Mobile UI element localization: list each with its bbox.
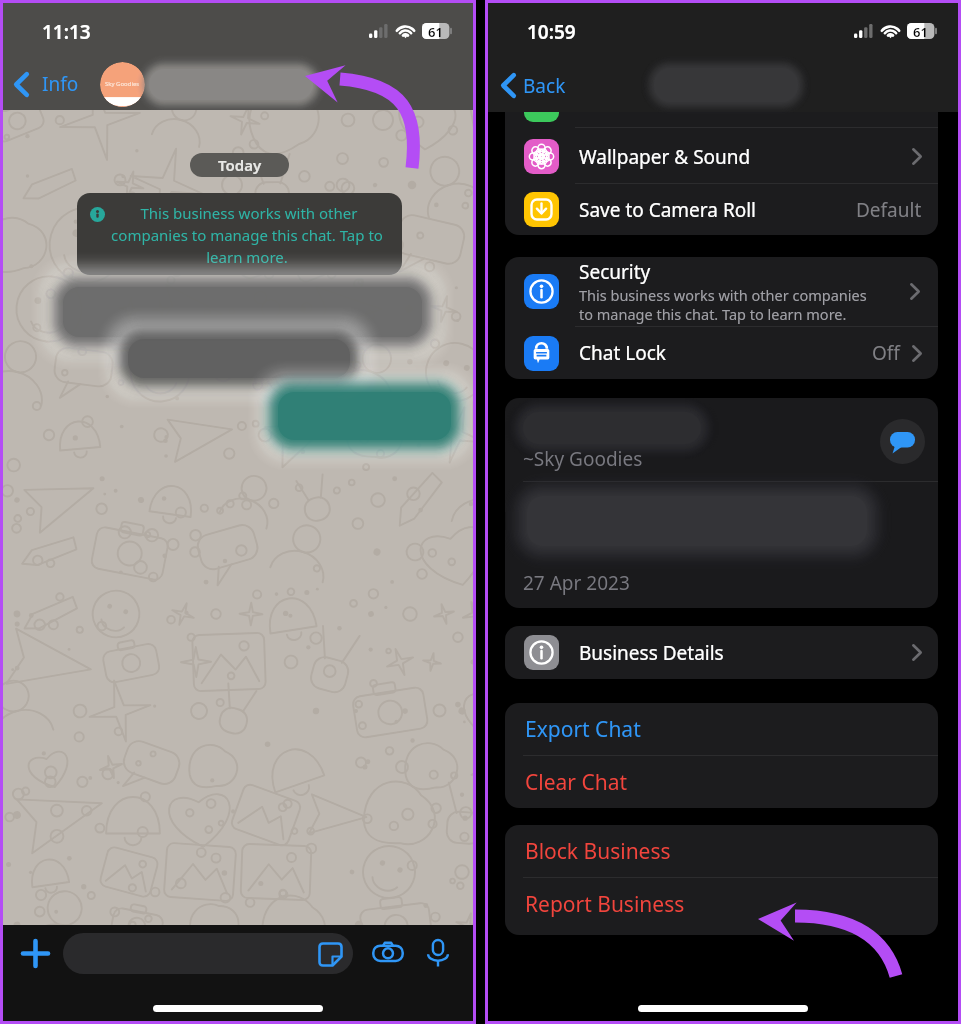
button[interactable]: Info [3, 71, 79, 97]
staticText: 27 Apr 2023 [523, 570, 630, 596]
staticText: Off [872, 340, 900, 366]
staticText: Block Business [525, 837, 671, 866]
staticText: 61 [913, 23, 928, 39]
staticText: Report Business [525, 890, 685, 919]
staticText: Business Details [579, 640, 724, 666]
staticText: 11:13 [42, 19, 91, 45]
staticText: 10:59 [527, 19, 576, 45]
button[interactable]: Back [488, 59, 576, 112]
staticText: Back [523, 73, 566, 99]
staticText: Security [579, 259, 651, 285]
staticText: This business works with other companies… [579, 285, 867, 324]
staticText: Info [42, 71, 79, 97]
button[interactable]: Message [880, 419, 925, 464]
button[interactable]: Block Business [505, 825, 938, 878]
button[interactable]: Clear Chat [505, 756, 938, 808]
staticText: Clear Chat [525, 768, 628, 797]
staticText: Save to Camera Roll [579, 197, 757, 223]
staticText: 61 [428, 23, 443, 39]
button[interactable]: Stickers [315, 939, 345, 969]
staticText: Sky Goodies [105, 80, 140, 88]
staticText: Wallpaper & Sound [579, 144, 751, 170]
button[interactable]: Business Details [505, 626, 938, 679]
staticText: Default [856, 197, 922, 223]
button[interactable]: Report Business [505, 878, 938, 931]
button[interactable]: Stickers [63, 933, 353, 974]
staticText: Export Chat [525, 715, 641, 744]
button[interactable]: ~Sky Goodies [505, 398, 938, 608]
button[interactable]: Save to Camera Roll [505, 183, 938, 235]
button[interactable]: Export Chat [505, 703, 938, 756]
button[interactable]: Voice message [419, 934, 457, 972]
staticText: Today [218, 155, 262, 175]
button[interactable]: Security [505, 257, 938, 326]
button[interactable]: Chat Lock [505, 327, 938, 379]
button[interactable]: Wallpaper & Sound [505, 130, 938, 184]
button[interactable]: Profile photo [100, 62, 145, 107]
button[interactable]: Camera [369, 934, 407, 972]
staticText: Chat Lock [579, 340, 666, 366]
staticText: ~Sky Goodies [523, 446, 643, 472]
button[interactable]: Attach [15, 933, 55, 973]
staticText: This business works with other companies… [105, 203, 389, 265]
